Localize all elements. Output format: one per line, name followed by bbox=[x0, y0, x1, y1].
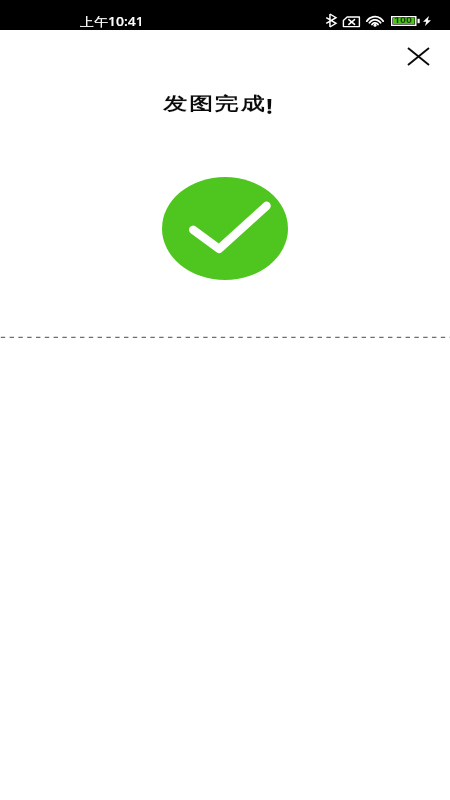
staticText: 100 bbox=[394, 14, 412, 25]
button[interactable]: Close bbox=[394, 32, 442, 80]
staticText: 发图完成 bbox=[163, 93, 267, 116]
staticText: 上午10:41 bbox=[80, 13, 144, 29]
staticText: ! bbox=[266, 90, 273, 120]
